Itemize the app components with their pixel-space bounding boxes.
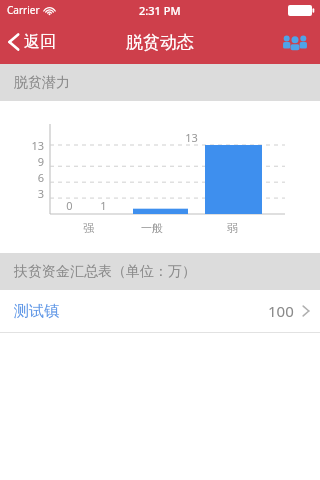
staticText: 脱贫动态 bbox=[126, 32, 194, 53]
staticText: 0 bbox=[66, 198, 73, 213]
staticText: 13 bbox=[185, 130, 198, 145]
staticText: 脱贫潜力 bbox=[14, 74, 70, 92]
staticText: 1 bbox=[100, 198, 107, 213]
button[interactable]: Contacts bbox=[270, 20, 320, 64]
button[interactable]: 返回 bbox=[0, 20, 66, 64]
staticText: 返回 bbox=[24, 32, 56, 52]
staticText: 强 bbox=[83, 221, 94, 235]
staticText: 扶贫资金汇总表（单位：万） bbox=[14, 263, 196, 281]
staticText: Carrier bbox=[7, 3, 40, 17]
staticText: 100 bbox=[268, 301, 294, 321]
staticText: 3 bbox=[37, 186, 44, 201]
staticText: 弱 bbox=[227, 221, 238, 235]
staticText: 13 bbox=[31, 138, 44, 153]
staticText: 2:31 PM bbox=[139, 3, 181, 18]
staticText: 一般 bbox=[141, 221, 163, 235]
staticText: 9 bbox=[37, 154, 44, 169]
staticText: 6 bbox=[37, 170, 44, 185]
button[interactable]: 测试镇 bbox=[0, 290, 320, 332]
staticText: 测试镇 bbox=[14, 302, 59, 321]
